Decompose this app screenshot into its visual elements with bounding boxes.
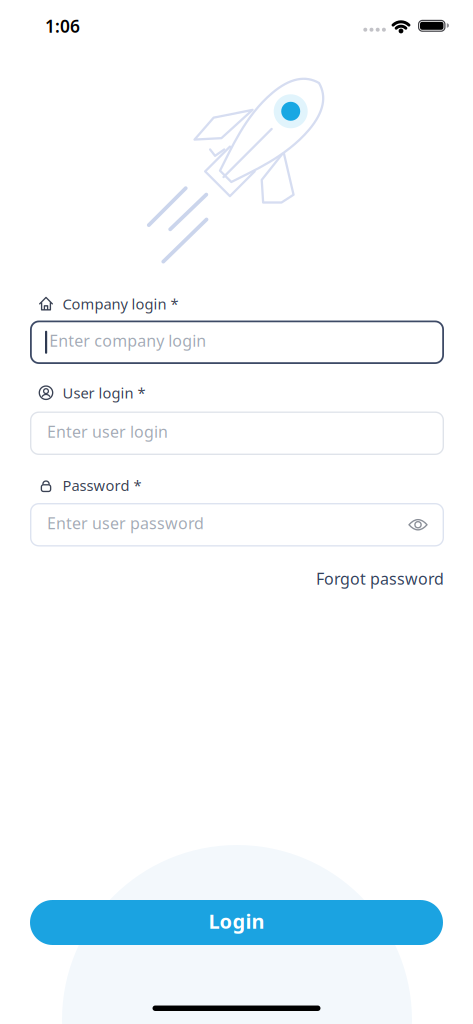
button[interactable]: Show password xyxy=(408,518,428,532)
staticText: Enter user login xyxy=(47,421,168,442)
staticText: Forgot password xyxy=(316,568,444,589)
button[interactable]: Forgot password xyxy=(316,568,444,589)
staticText: Company login * xyxy=(62,294,178,313)
staticText: Login xyxy=(208,908,264,934)
button[interactable]: Enter user login xyxy=(30,411,444,455)
staticText: Password * xyxy=(62,475,141,495)
staticText: Enter user password xyxy=(47,512,204,533)
button[interactable]: Enter company login xyxy=(30,320,444,364)
staticText: 1:06 xyxy=(45,14,80,37)
button[interactable]: Enter user password xyxy=(30,503,444,546)
button[interactable]: Login xyxy=(30,900,443,945)
staticText: User login * xyxy=(62,383,145,402)
staticText: Enter company login xyxy=(49,330,206,351)
